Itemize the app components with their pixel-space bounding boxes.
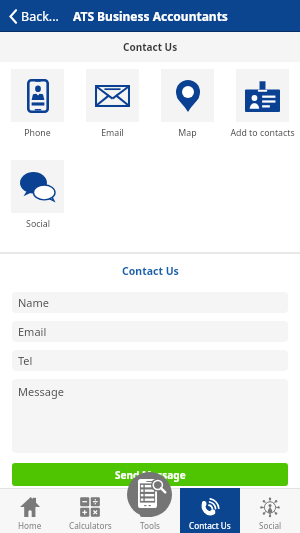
staticText: Home	[18, 520, 42, 531]
button[interactable]: Add to contacts	[236, 69, 289, 122]
button[interactable]: Calculators	[60, 488, 120, 533]
staticText: Calculators	[69, 520, 112, 531]
button[interactable]: Phone	[11, 69, 64, 122]
staticText: Tools	[140, 520, 160, 531]
button[interactable]: Back...	[0, 5, 65, 28]
staticText: Email	[18, 324, 47, 339]
staticText: Social	[26, 218, 50, 230]
button[interactable]: Map	[161, 69, 214, 122]
button[interactable]: Tools	[120, 488, 180, 533]
staticText: Back...	[21, 8, 59, 25]
button[interactable]: Email	[12, 321, 288, 342]
staticText: Social	[259, 520, 282, 531]
button[interactable]: Email	[86, 69, 139, 122]
staticText: Contact Us	[122, 264, 179, 278]
button[interactable]: Send Message	[12, 463, 288, 486]
staticText: Add to contacts	[230, 127, 295, 139]
button[interactable]: Home	[0, 488, 60, 533]
button[interactable]: Tel	[12, 350, 288, 371]
staticText: Contact Us	[123, 40, 178, 54]
button[interactable]: Message	[12, 379, 288, 453]
button[interactable]: Contact Us	[180, 488, 240, 533]
staticText: Send Message	[115, 468, 186, 482]
button[interactable]: Name	[12, 292, 288, 313]
button[interactable]: Tools	[127, 472, 172, 517]
staticText: Tel	[18, 353, 33, 368]
staticText: Contact Us	[189, 520, 231, 531]
staticText: ATS Business Accountants	[73, 8, 228, 24]
button[interactable]: Social	[240, 488, 300, 533]
staticText: Phone	[24, 127, 51, 139]
button[interactable]: Social	[11, 160, 64, 213]
staticText: Message	[18, 384, 64, 399]
staticText: Name	[18, 295, 50, 310]
staticText: Email	[101, 127, 124, 139]
staticText: Map	[178, 127, 197, 139]
